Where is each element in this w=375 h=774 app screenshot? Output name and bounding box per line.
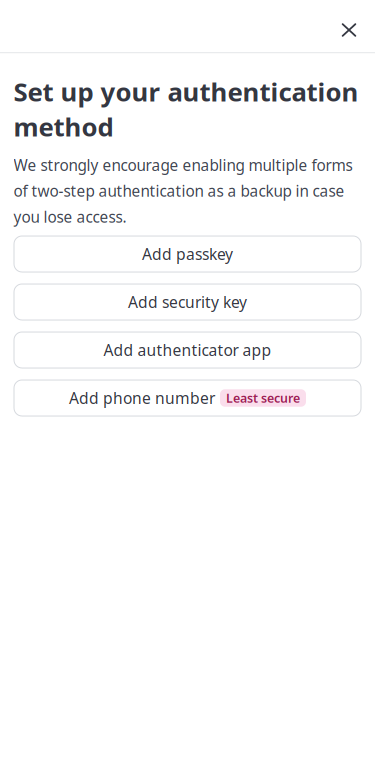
staticText: Add passkey — [142, 243, 233, 265]
staticText: Set up your authentication method — [13, 74, 358, 144]
staticText: Add phone number — [69, 387, 215, 409]
button[interactable]: Add authenticator app — [13, 331, 361, 368]
button[interactable]: Add passkey — [13, 235, 361, 272]
staticText: We strongly encourage enabling multiple … — [13, 154, 352, 227]
button[interactable]: Close — [327, 8, 371, 52]
staticText: Least secure — [226, 390, 300, 406]
staticText: Add authenticator app — [103, 339, 271, 361]
button[interactable]: Add security key — [13, 283, 361, 320]
button[interactable]: Add phone number — [13, 379, 361, 416]
staticText: Add security key — [128, 291, 247, 313]
